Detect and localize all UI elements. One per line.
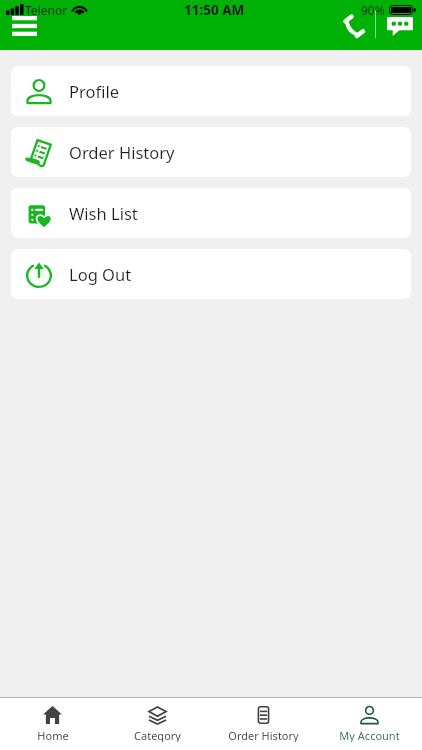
staticText: Wish List (69, 202, 138, 224)
button[interactable]: Menu (3, 8, 45, 44)
button[interactable]: Call (336, 7, 372, 45)
staticText: Log Out (69, 263, 132, 285)
button[interactable]: Wish List (11, 188, 411, 238)
button[interactable]: Chat (381, 10, 419, 42)
staticText: 90% (361, 2, 385, 18)
button[interactable]: Category (105, 698, 210, 750)
staticText: My Account (339, 728, 400, 742)
staticText: Order History (228, 728, 299, 742)
button[interactable]: My Account (316, 698, 422, 750)
button[interactable]: Order History (11, 127, 411, 177)
staticText: Home (37, 728, 69, 742)
staticText: Order History (69, 141, 175, 163)
button[interactable]: Profile (11, 66, 411, 116)
staticText: Telenor (25, 2, 68, 18)
staticText: Category (134, 728, 181, 742)
button[interactable]: Home (0, 698, 105, 750)
button[interactable]: Order History (210, 698, 316, 750)
staticText: 11:50 AM (184, 1, 245, 19)
staticText: Profile (69, 80, 119, 102)
button[interactable]: Log Out (11, 249, 411, 299)
